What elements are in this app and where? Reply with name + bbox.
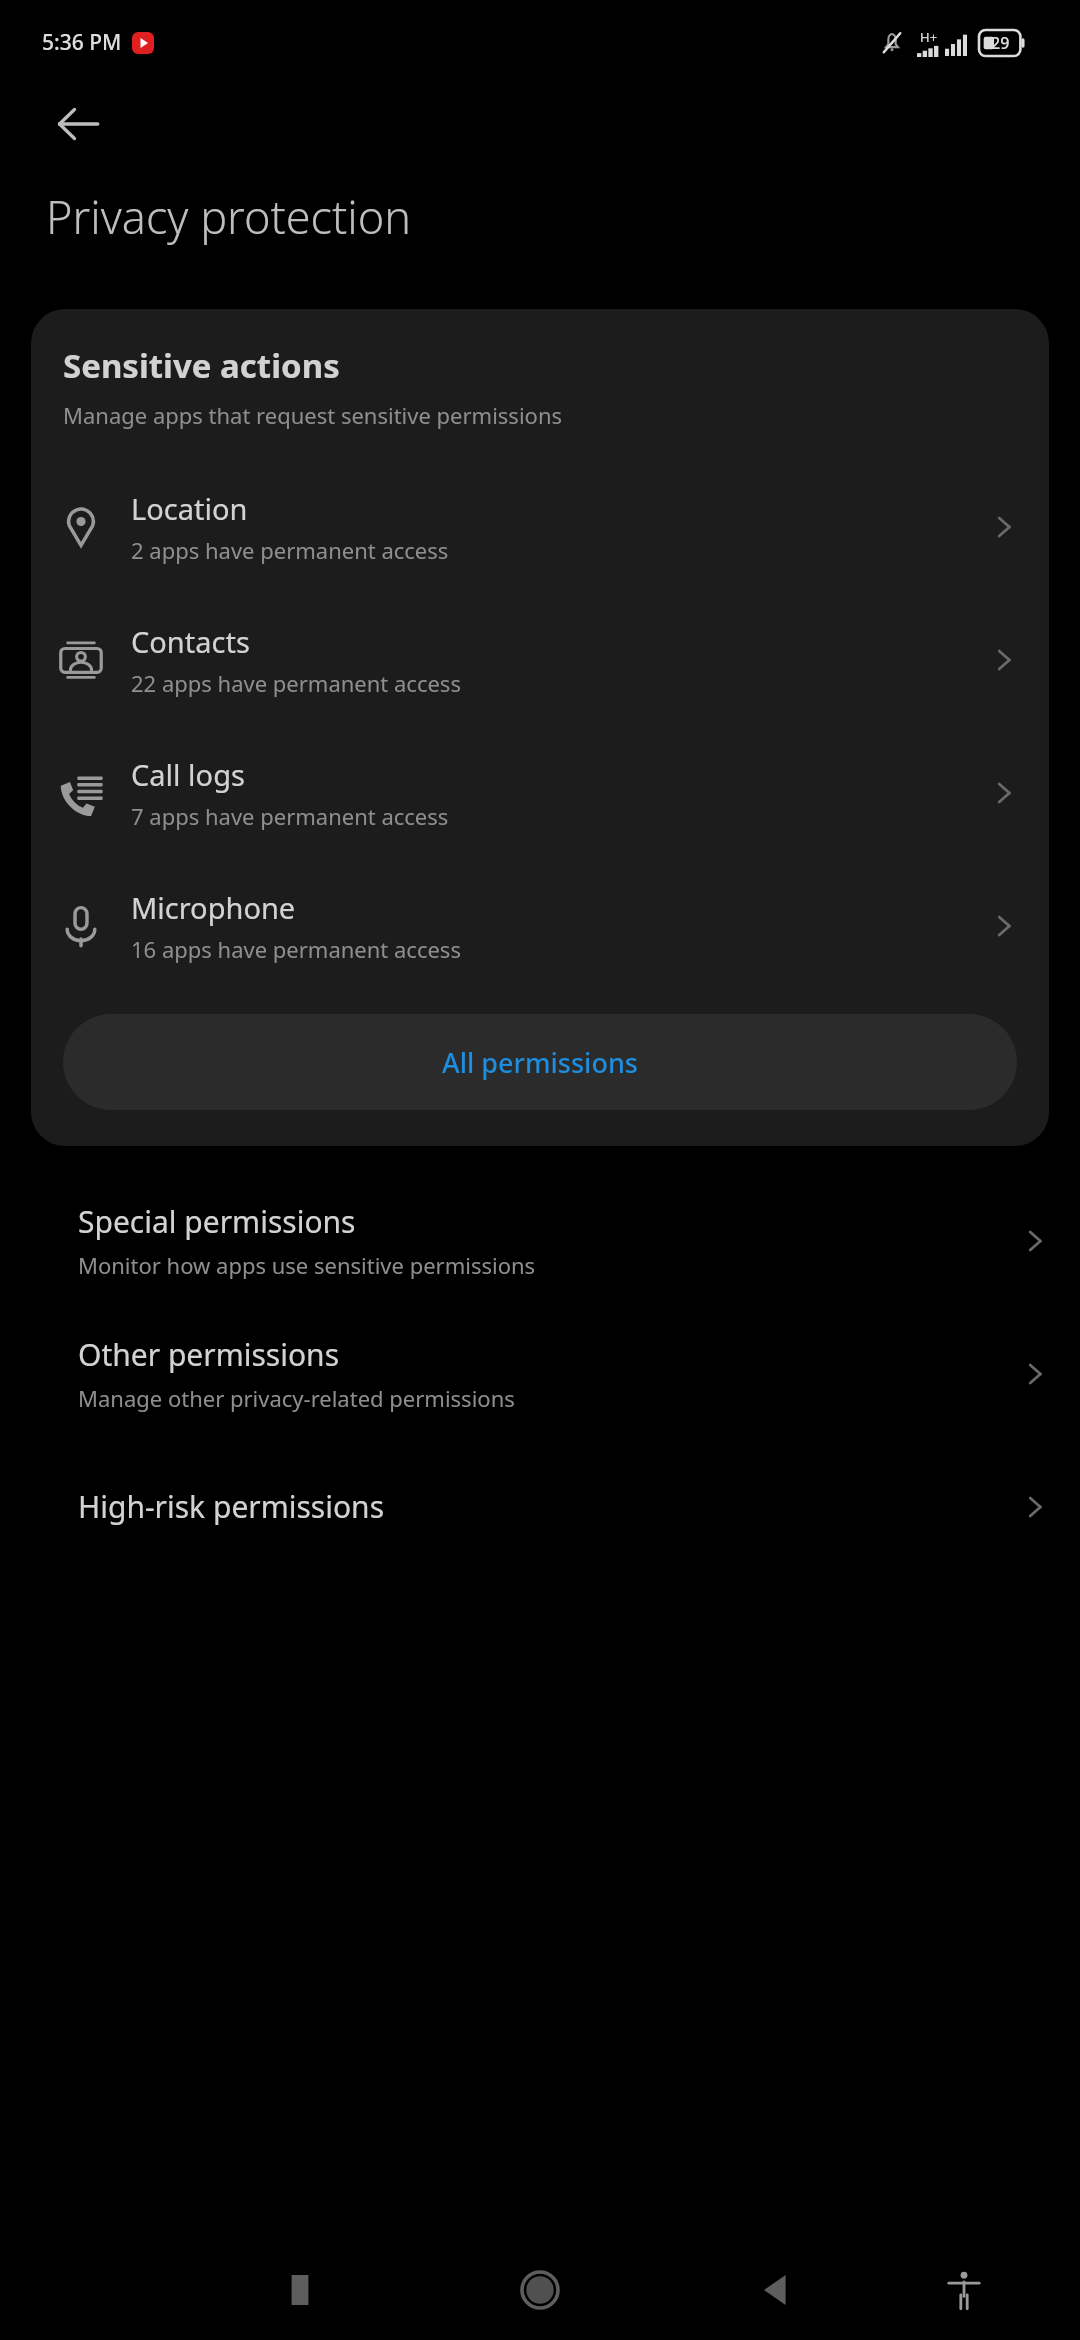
button[interactable]: High-risk permissions — [0, 1440, 1080, 1573]
button[interactable]: All permissions — [63, 1014, 1017, 1110]
staticText: H+ — [920, 28, 938, 46]
staticText: Call logs — [131, 755, 245, 794]
staticText: Manage apps that request sensitive permi… — [63, 400, 563, 430]
button[interactable]: Microphone — [31, 859, 1049, 992]
staticText: Manage other privacy-related permissions — [78, 1383, 515, 1413]
staticText: 29 — [991, 32, 1010, 54]
staticText: Microphone — [131, 888, 296, 927]
button[interactable]: Back — [734, 2248, 818, 2332]
staticText: 22 apps have permanent access — [131, 668, 461, 698]
staticText: Other permissions — [78, 1334, 339, 1375]
button[interactable]: Other permissions — [0, 1307, 1080, 1440]
button[interactable]: Contacts — [31, 593, 1049, 726]
staticText: 16 apps have permanent access — [131, 934, 461, 964]
button[interactable]: Accessibility menu — [922, 2248, 1006, 2332]
staticText: 7 apps have permanent access — [131, 801, 449, 831]
staticText: Sensitive actions — [63, 343, 340, 388]
button[interactable]: Home — [498, 2248, 582, 2332]
staticText: Contacts — [131, 622, 250, 661]
staticText: 5:36 PM — [42, 28, 122, 57]
staticText: Special permissions — [78, 1201, 356, 1242]
button[interactable]: Back — [30, 84, 126, 164]
button[interactable]: Special permissions — [0, 1174, 1080, 1307]
button[interactable]: Call logs — [31, 726, 1049, 859]
staticText: 2 apps have permanent access — [131, 535, 449, 565]
staticText: High-risk permissions — [78, 1486, 385, 1527]
button[interactable]: Recent apps — [258, 2248, 342, 2332]
staticText: All permissions — [442, 1044, 638, 1081]
staticText: Privacy protection — [46, 186, 412, 247]
button[interactable]: Location — [31, 460, 1049, 593]
staticText: Location — [131, 489, 248, 528]
staticText: Monitor how apps use sensitive permissio… — [78, 1250, 536, 1280]
